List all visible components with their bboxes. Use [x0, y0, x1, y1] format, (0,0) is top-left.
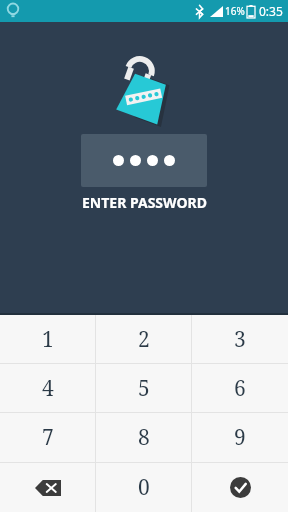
button[interactable]: Delete	[0, 463, 96, 512]
staticText: 1	[42, 325, 54, 354]
button[interactable]: 7	[0, 413, 96, 462]
button[interactable]: Confirm	[192, 463, 288, 512]
staticText: 2	[138, 325, 150, 354]
button[interactable]: 3	[192, 315, 288, 363]
staticText: 5	[138, 374, 150, 403]
staticText: 0	[138, 473, 150, 502]
other: Locked	[105, 55, 183, 121]
staticText: 4	[42, 374, 54, 403]
staticText: ENTER PASSWORD	[82, 193, 207, 212]
button[interactable]: 5	[96, 364, 192, 412]
button[interactable]: 2	[96, 315, 192, 363]
button[interactable]: 0	[96, 463, 192, 512]
staticText: 16%	[225, 4, 245, 18]
button[interactable]: 8	[96, 413, 192, 462]
staticText: 9	[234, 423, 246, 452]
staticText: 0:35	[259, 3, 283, 19]
button[interactable]	[81, 134, 207, 187]
button[interactable]: 4	[0, 364, 96, 412]
staticText: 7	[42, 423, 54, 452]
button[interactable]: 9	[192, 413, 288, 462]
staticText: 8	[138, 423, 150, 452]
staticText: 3	[234, 325, 246, 354]
staticText: 6	[234, 374, 246, 403]
button[interactable]: 6	[192, 364, 288, 412]
button[interactable]: 1	[0, 315, 96, 363]
